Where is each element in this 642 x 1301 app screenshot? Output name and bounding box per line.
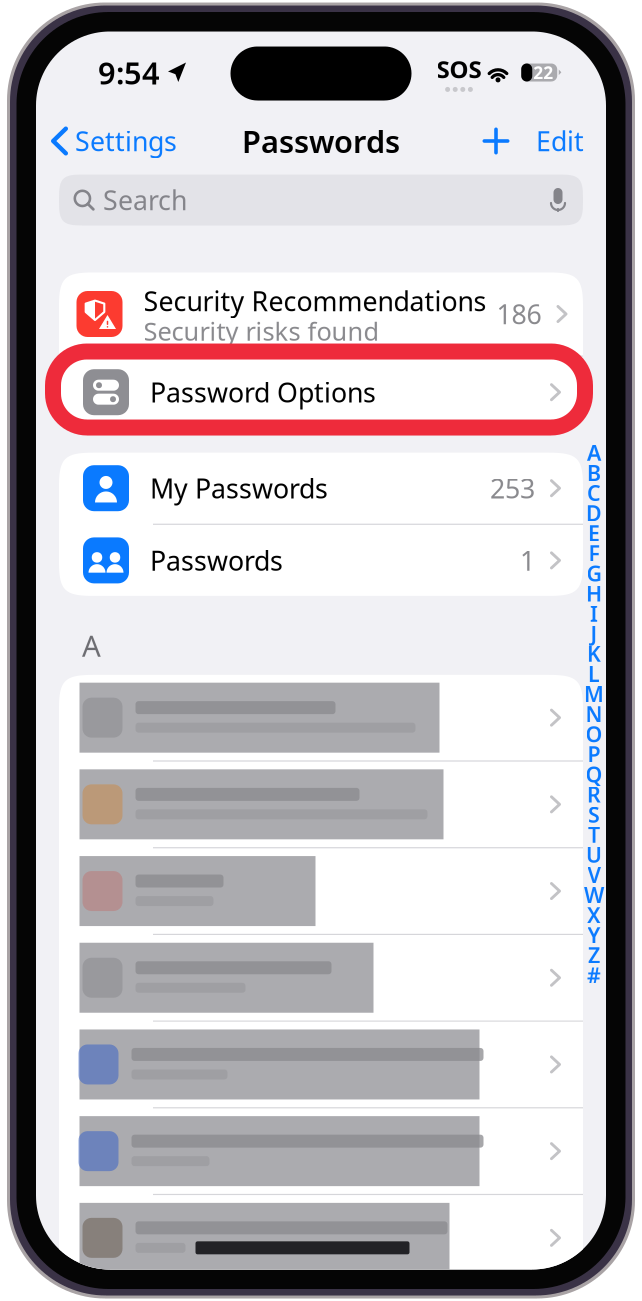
staticText: T xyxy=(588,820,600,849)
button[interactable] xyxy=(59,762,583,847)
button[interactable]: Settings xyxy=(47,116,181,166)
button[interactable] xyxy=(59,1108,583,1194)
staticText: Settings xyxy=(75,123,177,159)
button[interactable]: Add password xyxy=(474,116,518,166)
staticText: 22 xyxy=(533,61,553,84)
staticText: K xyxy=(587,639,601,668)
staticText: H xyxy=(586,579,602,607)
button[interactable] xyxy=(59,1195,583,1281)
staticText: V xyxy=(587,860,600,889)
button[interactable]: Search xyxy=(59,174,583,225)
staticText: U xyxy=(586,840,602,869)
staticText: S xyxy=(588,800,600,828)
staticText: Security risks found xyxy=(143,314,379,348)
staticText: N xyxy=(585,700,602,728)
button[interactable]: Security Recommendations xyxy=(59,272,583,355)
staticText: M xyxy=(584,680,604,708)
staticText: P xyxy=(587,740,600,768)
staticText: R xyxy=(587,780,601,808)
button[interactable]: Password Options xyxy=(59,357,583,428)
button[interactable] xyxy=(59,935,583,1020)
staticText: A xyxy=(587,438,601,467)
staticText: Edit xyxy=(536,123,584,159)
staticText: C xyxy=(587,479,601,507)
staticText: # xyxy=(587,961,601,989)
staticText: L xyxy=(588,659,600,688)
staticText: SOS xyxy=(436,53,481,85)
staticText: D xyxy=(586,499,602,527)
button[interactable]: Edit xyxy=(532,116,588,166)
staticText: W xyxy=(584,881,604,909)
button[interactable]: Passwords xyxy=(59,525,583,596)
staticText: X xyxy=(587,901,601,929)
staticText: G xyxy=(586,559,601,587)
staticText: 253 xyxy=(490,470,535,506)
staticText: 186 xyxy=(496,296,541,332)
button[interactable] xyxy=(59,1022,583,1107)
staticText: Security Recommendations xyxy=(143,283,486,319)
button[interactable] xyxy=(59,675,583,760)
staticText: J xyxy=(590,619,597,648)
staticText: A xyxy=(82,626,101,665)
staticText: Password Options xyxy=(150,374,376,410)
staticText: Passwords xyxy=(242,121,400,161)
button[interactable] xyxy=(59,848,583,934)
staticText: B xyxy=(587,458,601,487)
staticText: E xyxy=(588,519,600,547)
staticText: 9:54 xyxy=(98,52,160,93)
staticText: My Passwords xyxy=(150,470,328,506)
staticText: Search xyxy=(103,182,187,218)
staticText: Y xyxy=(587,921,600,949)
staticText: I xyxy=(590,599,598,627)
staticText: F xyxy=(588,539,599,567)
staticText: Z xyxy=(588,941,600,969)
staticText: O xyxy=(585,720,602,748)
staticText: 1 xyxy=(520,543,535,578)
staticText: Q xyxy=(585,760,602,788)
staticText: Passwords xyxy=(150,543,283,578)
button[interactable]: My Passwords xyxy=(59,453,583,524)
